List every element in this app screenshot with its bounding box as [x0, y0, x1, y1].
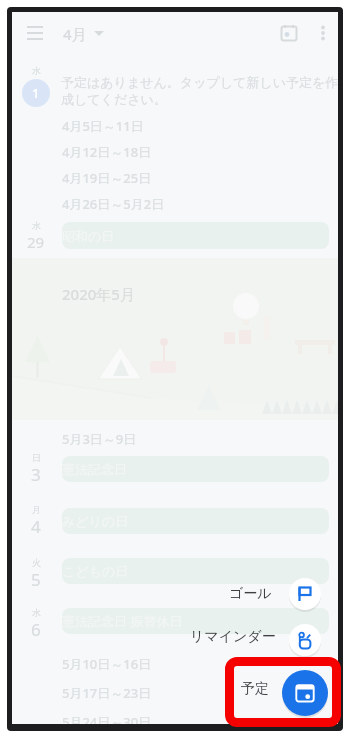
- staticText: 憲法記念日: [62, 461, 127, 477]
- button[interactable]: リマインダー: [188, 627, 278, 646]
- staticText: 水: [32, 607, 41, 618]
- button[interactable]: [289, 624, 321, 656]
- button[interactable]: [289, 578, 321, 610]
- staticText: 6: [31, 618, 41, 638]
- staticText: 5月17日～23日: [62, 684, 152, 700]
- staticText: 3: [31, 463, 41, 483]
- button[interactable]: [27, 25, 45, 43]
- staticText: 5月24日～30日: [62, 713, 152, 724]
- staticText: 4月5日～11日: [62, 117, 144, 133]
- button[interactable]: [282, 670, 328, 716]
- staticText: 予定はありません。タップして新しい予定を作: [61, 74, 338, 90]
- staticText: 1: [32, 84, 40, 102]
- staticText: 4月12日～18日: [62, 143, 152, 159]
- staticText: リマインダー: [190, 628, 276, 646]
- button[interactable]: 憲法記念日 振替休日: [62, 608, 329, 634]
- button[interactable]: 予定: [240, 680, 270, 698]
- staticText: 水: [32, 220, 41, 231]
- button[interactable]: [318, 25, 328, 41]
- button[interactable]: こどもの日: [62, 558, 329, 584]
- staticText: 月: [32, 504, 41, 515]
- staticText: 2020年5月: [62, 284, 135, 304]
- staticText: ゴール: [229, 585, 272, 603]
- staticText: 昭和の日: [62, 228, 115, 244]
- staticText: 予定: [241, 680, 269, 698]
- staticText: 成してください。: [61, 91, 167, 107]
- button[interactable]: [281, 25, 297, 41]
- staticText: 火: [32, 557, 41, 568]
- button[interactable]: 1: [22, 79, 50, 107]
- staticText: 5月3日～9日: [62, 430, 137, 446]
- staticText: 4月26日～5月2日: [62, 195, 165, 211]
- staticText: 4月: [63, 24, 87, 44]
- staticText: 5月10日～16日: [62, 655, 152, 671]
- button[interactable]: ゴール: [222, 585, 278, 603]
- staticText: 日: [32, 452, 41, 463]
- staticText: 4: [31, 515, 41, 535]
- staticText: 4月19日～25日: [62, 169, 152, 185]
- staticText: 5: [31, 568, 41, 588]
- staticText: 憲法記念日 振替休日: [62, 612, 183, 630]
- staticText: 29: [27, 232, 45, 250]
- staticText: 水: [32, 65, 41, 76]
